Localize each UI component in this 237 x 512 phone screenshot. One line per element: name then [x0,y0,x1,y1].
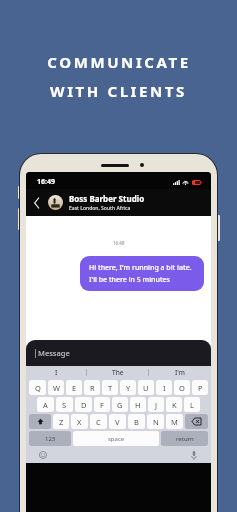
button[interactable]: A [37,397,54,412]
button[interactable]: N [147,414,164,429]
staticText: Y [126,383,131,393]
button[interactable]: Message [26,340,211,366]
button[interactable]: Shift [29,414,51,429]
staticText: U [143,383,149,393]
button[interactable]: Hi there, I'm running a bit late. I'll b… [80,256,204,291]
staticText: C [96,417,101,427]
button[interactable]: Z [53,414,69,429]
staticText: P [198,383,203,393]
staticText: O [179,383,185,393]
button[interactable]: R [84,380,100,395]
staticText: COMMUNICATE [47,52,191,72]
button[interactable]: The [87,366,149,379]
button[interactable]: L [184,397,200,412]
staticText: N [153,417,159,427]
staticText: T [108,383,113,393]
button[interactable]: space [73,431,159,446]
staticText: I'm [175,368,185,377]
staticText: X [77,417,82,427]
button[interactable]: Boss Barber Studio [69,193,203,212]
button[interactable]: I'm [149,366,211,379]
staticText: A [43,400,48,410]
button[interactable]: C [90,414,107,429]
staticText: L [190,400,194,410]
staticText: Z [59,417,64,427]
button[interactable]: W [48,380,64,395]
button[interactable]: E [66,380,82,395]
staticText: Boss Barber Studio [69,193,145,204]
button[interactable]: G [112,397,128,412]
button[interactable]: Q [29,380,46,395]
button[interactable]: Backspace [185,414,208,429]
button[interactable]: S [56,397,73,412]
staticText: Message [38,348,70,358]
staticText: W [53,383,60,393]
staticText: 16:48 [113,240,125,246]
staticText: J [155,400,158,410]
staticText: East London, South Africa [69,205,131,212]
staticText: I [55,368,58,377]
staticText: H [135,400,141,410]
staticText: D [81,400,87,410]
staticText: B [134,417,139,427]
button[interactable]: I [26,366,87,379]
staticText: M [171,417,178,427]
staticText: E [72,383,77,393]
button[interactable]: F [94,397,110,412]
staticText: K [172,400,177,410]
staticText: V [115,417,120,427]
staticText: Hi there, I'm running a bit late. I'll b… [89,263,195,284]
staticText: The [112,368,124,377]
button[interactable]: T [102,380,118,395]
button[interactable]: J [148,397,164,412]
button[interactable]: H [130,397,146,412]
button[interactable]: I [156,380,172,395]
staticText: Q [35,383,41,393]
button[interactable]: Voice input [189,450,199,460]
staticText: R [90,383,95,393]
button[interactable]: Y [120,380,136,395]
button[interactable]: Back [26,189,48,216]
button[interactable]: U [138,380,154,395]
staticText: 123 [45,435,56,443]
button[interactable]: X [71,414,88,429]
button[interactable]: B [128,414,145,429]
button[interactable]: M [166,414,183,429]
button[interactable]: K [166,397,182,412]
staticText: WITH CLIENTS [50,81,187,101]
button[interactable]: V [109,414,126,429]
button[interactable]: P [192,380,208,395]
button[interactable]: Emoji [38,450,48,460]
staticText: space [108,435,125,443]
staticText: S [62,400,67,410]
button[interactable]: O [174,380,190,395]
button[interactable]: return [161,431,208,446]
staticText: I [163,383,166,393]
staticText: F [100,400,104,410]
button[interactable]: 123 [29,431,71,446]
button[interactable]: D [75,397,92,412]
staticText: G [117,400,123,410]
staticText: 16:49 [37,177,55,187]
staticText: return [176,435,194,443]
